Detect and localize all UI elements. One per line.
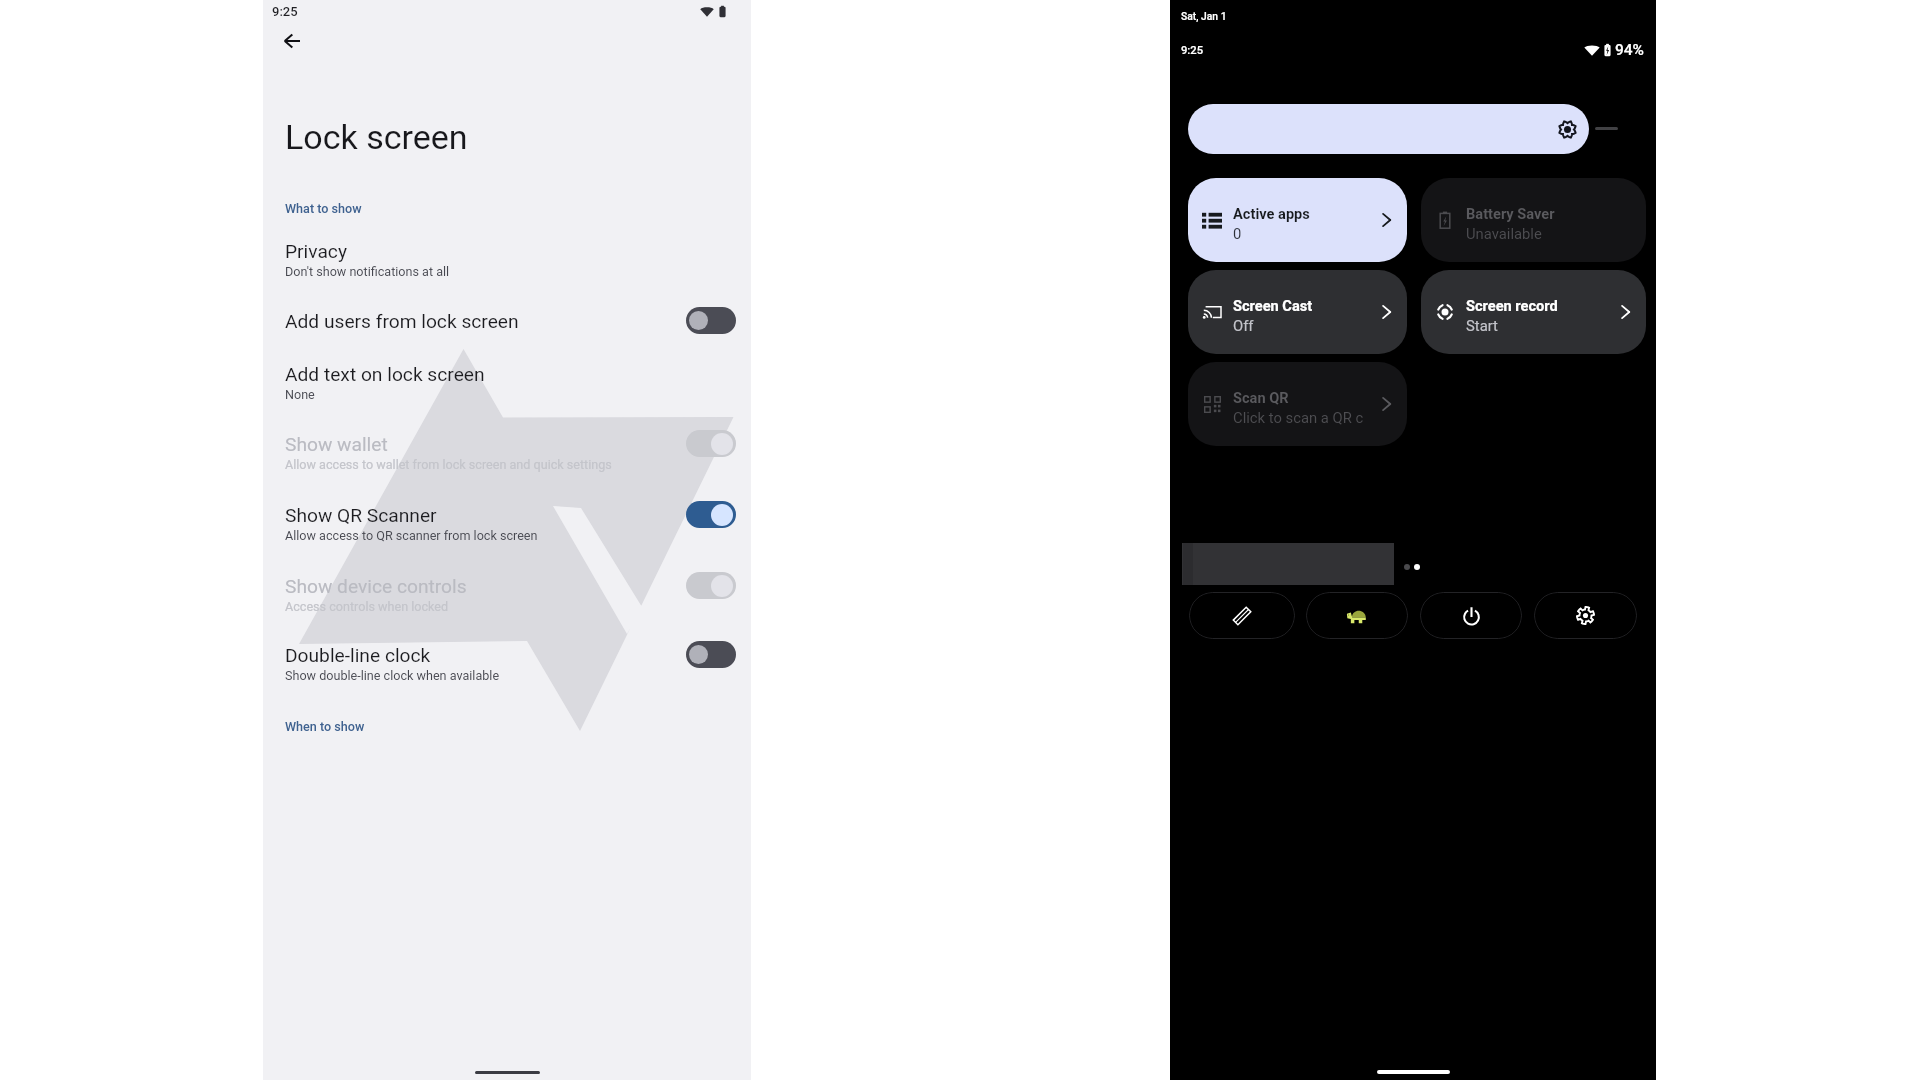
button[interactable]: Toggle bbox=[686, 572, 736, 599]
staticText: Show device controls bbox=[285, 575, 467, 598]
button[interactable]: Toggle bbox=[686, 641, 736, 668]
button[interactable]: Data saver bbox=[1306, 592, 1408, 639]
staticText: Battery Saver bbox=[1466, 205, 1555, 222]
staticText: Access controls when locked bbox=[285, 599, 449, 614]
staticText: Allow access to QR scanner from lock scr… bbox=[285, 528, 538, 543]
button[interactable]: Active apps bbox=[1188, 178, 1407, 262]
staticText: Screen Cast bbox=[1233, 297, 1313, 314]
staticText: Scan QR bbox=[1233, 389, 1289, 406]
button[interactable]: Add text on lock screen bbox=[263, 350, 751, 403]
button[interactable]: Double-line clock bbox=[263, 631, 751, 684]
staticText: When to show bbox=[285, 719, 365, 734]
staticText: 9:25 bbox=[1181, 44, 1204, 57]
button[interactable]: Add users from lock screen bbox=[263, 297, 751, 335]
staticText: Click to scan a QR c bbox=[1233, 409, 1364, 426]
staticText: Don't show notifications at all bbox=[285, 264, 450, 279]
button[interactable]: Edit bbox=[1189, 592, 1295, 639]
button[interactable]: Brightness bbox=[1188, 104, 1589, 154]
button[interactable]: Screen Cast bbox=[1188, 270, 1407, 354]
button[interactable]: Battery Saver bbox=[1421, 178, 1646, 262]
staticText: Show double-line clock when available bbox=[285, 668, 500, 683]
button[interactable]: Settings bbox=[1534, 592, 1637, 639]
staticText: Show QR Scanner bbox=[285, 504, 437, 527]
button[interactable]: Screen record bbox=[1421, 270, 1646, 354]
staticText: Screen record bbox=[1466, 297, 1558, 314]
button[interactable]: Scan QR bbox=[1188, 362, 1407, 446]
button[interactable]: Show QR Scanner bbox=[263, 491, 751, 544]
staticText: Sat, Jan 1 bbox=[1181, 10, 1227, 22]
staticText: 0 bbox=[1233, 225, 1242, 242]
button[interactable]: Toggle bbox=[686, 501, 736, 528]
staticText: 94% bbox=[1615, 41, 1645, 59]
button[interactable]: Show wallet bbox=[263, 420, 751, 473]
staticText: Show wallet bbox=[285, 433, 388, 456]
button[interactable]: Power bbox=[1420, 592, 1522, 639]
staticText: Add users from lock screen bbox=[285, 310, 519, 333]
staticText: Unavailable bbox=[1466, 225, 1542, 242]
button[interactable]: Toggle bbox=[686, 307, 736, 334]
button[interactable]: Show device controls bbox=[263, 562, 751, 615]
staticText: Add text on lock screen bbox=[285, 363, 485, 386]
staticText: Lock screen bbox=[285, 117, 468, 157]
button[interactable]: Privacy bbox=[263, 227, 751, 280]
staticText: What to show bbox=[285, 201, 362, 216]
staticText: None bbox=[285, 387, 315, 402]
staticText: Double-line clock bbox=[285, 644, 431, 667]
staticText: Allow access to wallet from lock screen … bbox=[285, 457, 612, 472]
button[interactable]: Toggle bbox=[686, 430, 736, 457]
staticText: 9:25 bbox=[272, 4, 298, 19]
staticText: Active apps bbox=[1233, 205, 1310, 222]
staticText: Start bbox=[1466, 317, 1498, 334]
button[interactable]: Back bbox=[272, 21, 312, 61]
staticText: Off bbox=[1233, 317, 1254, 334]
staticText: Privacy bbox=[285, 240, 347, 263]
